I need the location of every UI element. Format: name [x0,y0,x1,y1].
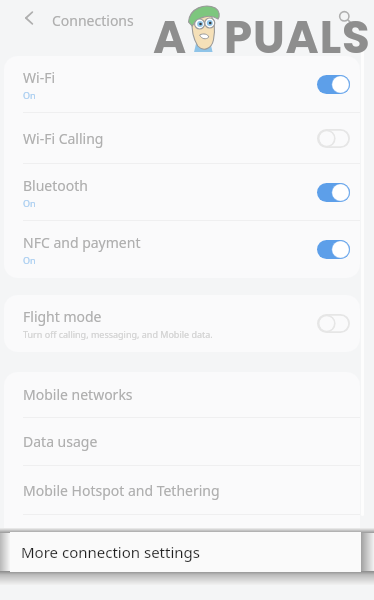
staticText: A [153,6,187,69]
staticText: On [23,89,36,101]
button[interactable]: Switch off [317,314,350,333]
button[interactable]: Search [333,5,357,29]
staticText: Mobile Hotspot and Tethering [23,481,220,500]
button[interactable]: Data usage [4,418,360,465]
staticText: Wi-Fi [23,68,56,87]
staticText: Turn off calling, messaging, and Mobile … [23,328,213,340]
button[interactable]: NFC and payment [4,221,360,278]
staticText: More connection settings [21,542,200,562]
staticText: On [23,254,36,266]
button[interactable]: Wi-Fi [4,56,360,112]
staticText: Wi-Fi Calling [23,129,104,148]
button[interactable]: Switch on [317,240,350,259]
staticText: Bluetooth [23,176,88,195]
staticText: Flight mode [23,307,102,326]
staticText: Mobile networks [23,385,133,404]
button[interactable]: Back [18,7,40,29]
button[interactable]: Mobile Hotspot and Tethering [4,466,360,514]
button[interactable]: Flight mode [4,295,360,352]
staticText: More connection settings [23,528,191,547]
staticText: Connections [52,11,134,30]
staticText: NFC and payment [23,233,141,252]
button[interactable]: Switch on [317,183,350,202]
button[interactable]: Bluetooth [4,164,360,220]
button[interactable]: Switch off [317,129,350,148]
button[interactable]: More connection settings [4,515,360,560]
button[interactable]: Switch on [317,75,350,94]
button[interactable]: Mobile networks [4,372,360,417]
staticText: Data usage [23,432,98,451]
staticText: On [23,197,36,209]
staticText: PUALS [224,6,371,69]
button[interactable]: More connection settings [10,532,361,572]
button[interactable]: Wi-Fi Calling [4,113,360,163]
